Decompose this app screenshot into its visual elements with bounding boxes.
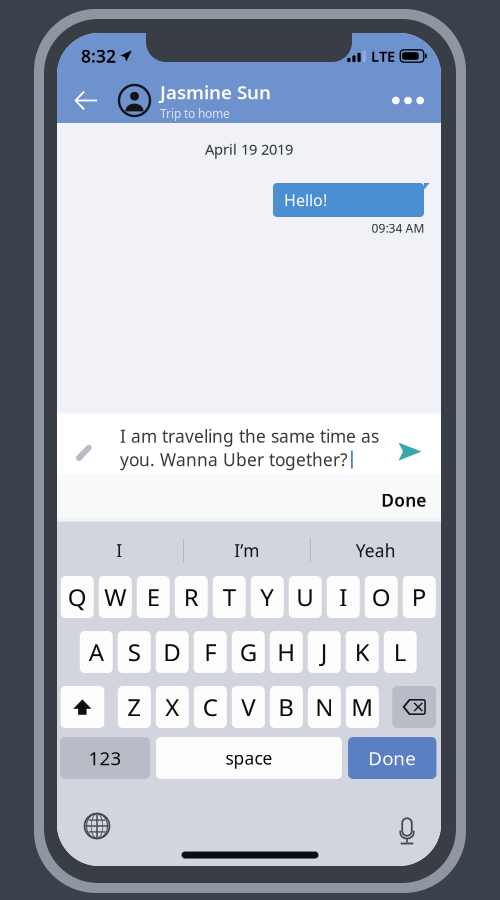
button[interactable]: K — [346, 631, 379, 673]
button[interactable]: C — [194, 686, 227, 728]
button[interactable]: Send — [391, 433, 429, 471]
staticText: you. Wanna Uber together? — [120, 448, 348, 471]
staticText: Trip to home — [160, 105, 230, 121]
button[interactable]: V — [232, 686, 265, 728]
button[interactable]: F — [194, 631, 227, 673]
staticText: I’m — [234, 539, 259, 562]
staticText: A — [89, 636, 104, 668]
staticText: C — [203, 691, 218, 723]
staticText: 09:34 AM — [372, 220, 425, 236]
staticText: G — [240, 636, 257, 668]
staticText: R — [184, 581, 199, 613]
staticText: I — [339, 581, 347, 613]
button[interactable]: G — [232, 631, 265, 673]
staticText: J — [321, 636, 328, 668]
button[interactable]: space — [156, 737, 342, 779]
button[interactable]: H — [270, 631, 303, 673]
button[interactable]: J — [308, 631, 341, 673]
staticText: Q — [68, 581, 87, 613]
staticText: F — [204, 636, 216, 668]
button[interactable]: More options — [386, 78, 430, 122]
staticText: B — [278, 691, 294, 723]
staticText: U — [296, 581, 314, 613]
button[interactable]: Q — [61, 576, 94, 618]
staticText: 123 — [88, 746, 121, 770]
button[interactable]: I’m — [184, 534, 310, 567]
staticText: V — [241, 691, 255, 723]
staticText: E — [147, 581, 160, 613]
staticText: April 19 2019 — [205, 139, 293, 159]
staticText: Done — [381, 488, 426, 511]
staticText: O — [372, 581, 391, 613]
button[interactable]: U — [289, 576, 322, 618]
staticText: X — [165, 691, 179, 723]
button[interactable]: W — [99, 576, 132, 618]
button[interactable]: N — [308, 686, 341, 728]
button[interactable]: R — [175, 576, 208, 618]
button[interactable]: Yeah — [313, 534, 439, 567]
staticText: 8:32 — [81, 44, 116, 67]
button[interactable]: E — [137, 576, 170, 618]
staticText: Jasmine Sun — [160, 80, 271, 104]
button[interactable]: Dictate — [386, 806, 428, 848]
button[interactable]: Switch keyboard — [76, 805, 118, 847]
staticText: I — [116, 539, 122, 562]
staticText: T — [223, 581, 236, 613]
button[interactable]: Y — [251, 576, 284, 618]
button[interactable]: O — [365, 576, 398, 618]
staticText: Done — [368, 746, 416, 770]
button[interactable]: X — [156, 686, 189, 728]
button[interactable]: I — [327, 576, 360, 618]
staticText: K — [355, 636, 370, 668]
button[interactable]: M — [346, 686, 379, 728]
staticText: D — [163, 636, 181, 668]
staticText: M — [351, 691, 373, 723]
staticText: Z — [127, 691, 141, 723]
staticText: Y — [260, 581, 274, 613]
staticText: LTE — [371, 46, 395, 66]
staticText: H — [277, 636, 295, 668]
staticText: space — [225, 746, 272, 769]
button[interactable]: L — [384, 631, 417, 673]
staticText: Yeah — [356, 539, 396, 562]
button[interactable]: 123 — [60, 737, 150, 779]
button[interactable]: Attach file — [63, 435, 103, 475]
button[interactable]: A — [80, 631, 113, 673]
staticText: P — [412, 581, 427, 613]
button[interactable]: I — [56, 534, 182, 567]
button[interactable]: P — [403, 576, 436, 618]
staticText: Hello! — [284, 189, 327, 211]
button[interactable]: Done — [367, 478, 441, 522]
staticText: L — [394, 636, 407, 668]
button[interactable]: D — [156, 631, 189, 673]
button[interactable]: S — [118, 631, 151, 673]
staticText: I am traveling the same time as — [120, 425, 379, 448]
button[interactable]: T — [213, 576, 246, 618]
button[interactable]: Shift — [60, 686, 104, 728]
button[interactable]: B — [270, 686, 303, 728]
button[interactable]: Back — [64, 76, 108, 124]
button[interactable]: Z — [118, 686, 151, 728]
button[interactable]: Backspace — [392, 686, 436, 728]
staticText: S — [128, 636, 141, 668]
staticText: W — [104, 581, 126, 613]
staticText: N — [315, 691, 333, 723]
button[interactable]: Done — [348, 737, 436, 779]
